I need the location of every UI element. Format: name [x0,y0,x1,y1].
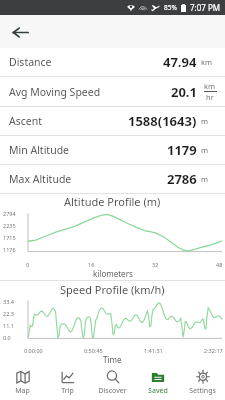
staticText: Max Altitude [9,172,72,186]
staticText: Distance [9,55,52,69]
staticText: 48 [216,261,223,268]
button[interactable]: Distance [0,48,225,76]
button[interactable]: Ascent [0,107,225,135]
button[interactable]: Speed Profile (km/h) [0,281,225,366]
staticText: 0 [26,261,30,268]
staticText: km [204,81,216,91]
staticText: 7:07 PM [190,2,221,13]
staticText: hr [206,92,214,102]
staticText: 16 [88,261,95,268]
button[interactable]: Max Altitude [0,165,225,193]
button[interactable]: Saved [135,366,180,400]
staticText: 32 [152,261,159,268]
staticText: 22.3 [3,310,14,317]
staticText: 2235 [3,222,16,229]
staticText: Map [15,386,30,396]
staticText: 0:00:00 [24,347,43,354]
staticText: 20.1 [171,83,197,101]
staticText: 11.1 [3,322,14,329]
staticText: 1179 [167,141,197,159]
staticText: Avg Moving Speed [9,85,101,99]
button[interactable]: Back [6,18,34,46]
staticText: 33.4 [3,298,14,305]
staticText: Ascent [9,114,42,128]
staticText: 47.94 [163,53,197,71]
button[interactable]: Discover [90,366,135,400]
staticText: km [201,57,213,67]
staticText: 1588(1643) [128,112,197,130]
button[interactable]: Settings [180,366,225,400]
staticText: kilometers [93,268,133,279]
staticText: m [201,174,209,184]
button[interactable]: Altitude Profile (m) [0,194,225,280]
button[interactable]: Avg Moving Speed [0,77,225,106]
staticText: Speed Profile (km/h) [60,282,165,297]
staticText: 1176 [3,246,16,253]
button[interactable]: Map [0,366,45,400]
staticText: 1:41:31 [144,347,163,354]
staticText: Discover [98,386,127,396]
staticText: Settings [189,386,216,396]
staticText: 2794 [3,210,16,217]
staticText: Trip [61,386,74,396]
staticText: Time [103,354,122,365]
button[interactable]: Min Altitude [0,136,225,164]
staticText: Min Altitude [9,143,70,157]
staticText: 0:50:45 [84,347,103,354]
staticText: 85% [164,3,177,12]
button[interactable]: Trip [45,366,90,400]
staticText: Altitude Profile (m) [64,194,161,209]
staticText: m [201,145,209,155]
staticText: m [201,116,209,126]
staticText: 2786 [167,170,197,188]
staticText: Saved [148,386,168,396]
staticText: 0.0 [3,334,11,341]
staticText: 1715 [3,234,16,241]
staticText: 2:32:17 [204,347,223,354]
